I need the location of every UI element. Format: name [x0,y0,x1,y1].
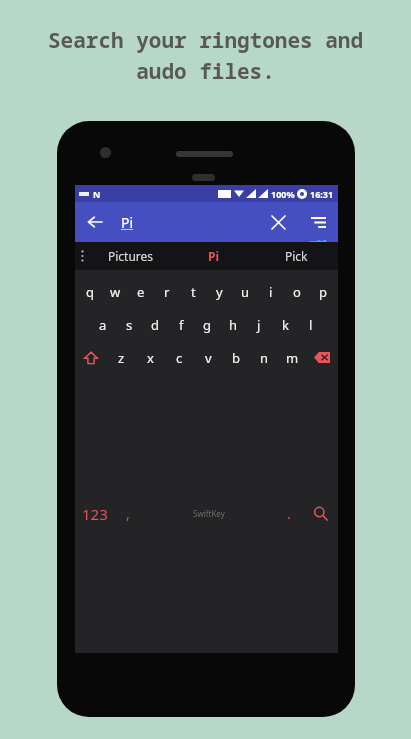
staticText: Pi [208,248,220,264]
staticText: t [191,283,196,301]
staticText: f [179,316,184,334]
staticText: l [309,316,313,334]
staticText: Search your ringtones and audo files. [48,26,363,85]
staticText: v [205,349,212,367]
staticText: x [147,349,154,367]
staticText: o [293,283,301,301]
staticText: 16:31 [310,188,334,200]
button[interactable]: Period [276,374,302,653]
staticText: Pick [285,248,308,264]
button[interactable]: i [258,275,284,308]
staticText: 123 [82,504,108,524]
button[interactable]: e [128,275,154,308]
button[interactable]: Backspace [306,341,338,374]
staticText: u [241,283,250,301]
staticText: w [110,283,121,301]
staticText: n [260,349,269,367]
staticText: j [257,316,261,334]
staticText: N [93,188,101,200]
button[interactable]: Sort [298,202,338,242]
staticText: p [319,283,327,301]
button[interactable]: k [272,308,298,341]
staticText: Pictures [108,248,154,264]
button[interactable]: c [165,341,194,374]
button[interactable]: l [298,308,324,341]
button[interactable]: 123 [75,374,115,653]
button[interactable]: t [180,275,206,308]
button[interactable]: d [142,308,168,341]
staticText: y [216,283,223,301]
button[interactable]: w [102,275,128,308]
button[interactable]: Back [75,202,115,242]
button[interactable]: Keyboard menu [75,242,89,270]
staticText: h [229,316,238,334]
button[interactable]: q [77,275,102,308]
button[interactable]: f [168,308,194,341]
staticText: z [118,349,125,367]
staticText: a [99,316,107,334]
staticText: g [203,316,211,334]
staticText: . [287,504,291,523]
staticText: i [269,283,273,301]
button[interactable]: v [194,341,222,374]
staticText: b [232,349,240,367]
button[interactable]: m [278,341,306,374]
staticText: , [126,504,130,523]
button[interactable]: g [194,308,220,341]
button[interactable]: a [89,308,116,341]
button[interactable]: r [154,275,180,308]
button[interactable]: o [284,275,310,308]
button[interactable]: Comma [115,374,141,653]
button[interactable]: j [246,308,272,341]
button[interactable]: Search [302,374,338,653]
staticText: k [282,316,289,334]
staticText: m [286,349,299,367]
button[interactable]: s [116,308,142,341]
button[interactable]: n [250,341,278,374]
staticText: q [86,283,94,301]
button[interactable]: Pi [172,242,255,270]
button[interactable]: Pictures [89,242,172,270]
staticText: Pi [121,213,134,232]
button[interactable]: z [107,341,136,374]
staticText: r [164,283,170,301]
button[interactable]: b [222,341,250,374]
button[interactable]: Shift [75,341,107,374]
staticText: s [126,316,133,334]
button[interactable]: Clear [258,202,298,242]
staticText: 100% [271,188,295,200]
staticText: d [151,316,159,334]
button[interactable]: Pi [121,207,134,238]
button[interactable]: p [310,275,336,308]
staticText: e [137,283,145,301]
button[interactable]: x [136,341,165,374]
button[interactable]: y [206,275,232,308]
staticText: c [176,349,183,367]
button[interactable]: u [232,275,258,308]
staticText: SwiftKey [193,508,225,519]
button[interactable]: Pick [255,242,338,270]
button[interactable]: h [220,308,246,341]
